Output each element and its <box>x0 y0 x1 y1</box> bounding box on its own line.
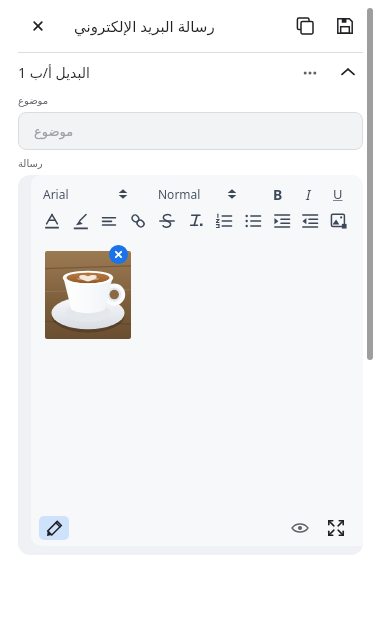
staticText: موضوع <box>34 124 74 139</box>
button[interactable]: Arial <box>41 186 71 202</box>
staticText: U <box>333 185 343 203</box>
button[interactable]: رابط <box>125 210 151 232</box>
button[interactable]: زيادة المسافة البادئة <box>269 210 295 232</box>
button[interactable]: نسخ <box>290 11 320 41</box>
button[interactable]: إزالة الصورة <box>109 245 128 264</box>
staticText: رسالة البريد الإلكتروني <box>74 16 215 36</box>
button[interactable]: لون النص <box>39 210 65 232</box>
button[interactable]: معاينة <box>287 515 313 541</box>
staticText: رسالة <box>18 158 43 170</box>
button[interactable]: تمييز <box>68 210 94 232</box>
staticText: I <box>306 185 311 204</box>
button[interactable]: إدراج صورة <box>326 210 352 232</box>
button[interactable]: إغلاق <box>24 12 52 40</box>
button[interactable]: تقليل المسافة البادئة <box>297 210 323 232</box>
staticText: البديل أ/ب 1 <box>18 63 90 82</box>
button[interactable]: تكبير <box>323 515 349 541</box>
button[interactable]: محو التنسيق <box>183 210 209 232</box>
button[interactable]: المزيد <box>296 58 324 86</box>
button[interactable]: قائمة نقطية <box>240 210 266 232</box>
button[interactable]: اختيار الخط <box>113 184 133 204</box>
button[interactable]: صورة مرفقة <box>45 251 131 339</box>
button[interactable]: تسطير <box>325 183 351 205</box>
staticText: B <box>273 185 283 204</box>
staticText: Arial <box>43 186 69 202</box>
button[interactable]: حفظ <box>330 11 360 41</box>
staticText: Normal <box>158 186 201 202</box>
button[interactable]: يتوسطه خط <box>154 210 180 232</box>
button[interactable]: مائل <box>295 183 321 205</box>
button[interactable]: غامق <box>265 183 291 205</box>
staticText: موضوع <box>18 95 49 107</box>
button[interactable]: طي <box>334 58 362 86</box>
button[interactable]: Normal <box>156 186 203 202</box>
button[interactable]: محاذاة <box>96 210 122 232</box>
button[interactable]: حجم الخط <box>222 184 242 204</box>
button[interactable]: موضوع <box>18 112 363 150</box>
button[interactable]: قائمة مرقّمة <box>211 210 237 232</box>
button[interactable]: تعديل <box>39 516 69 540</box>
